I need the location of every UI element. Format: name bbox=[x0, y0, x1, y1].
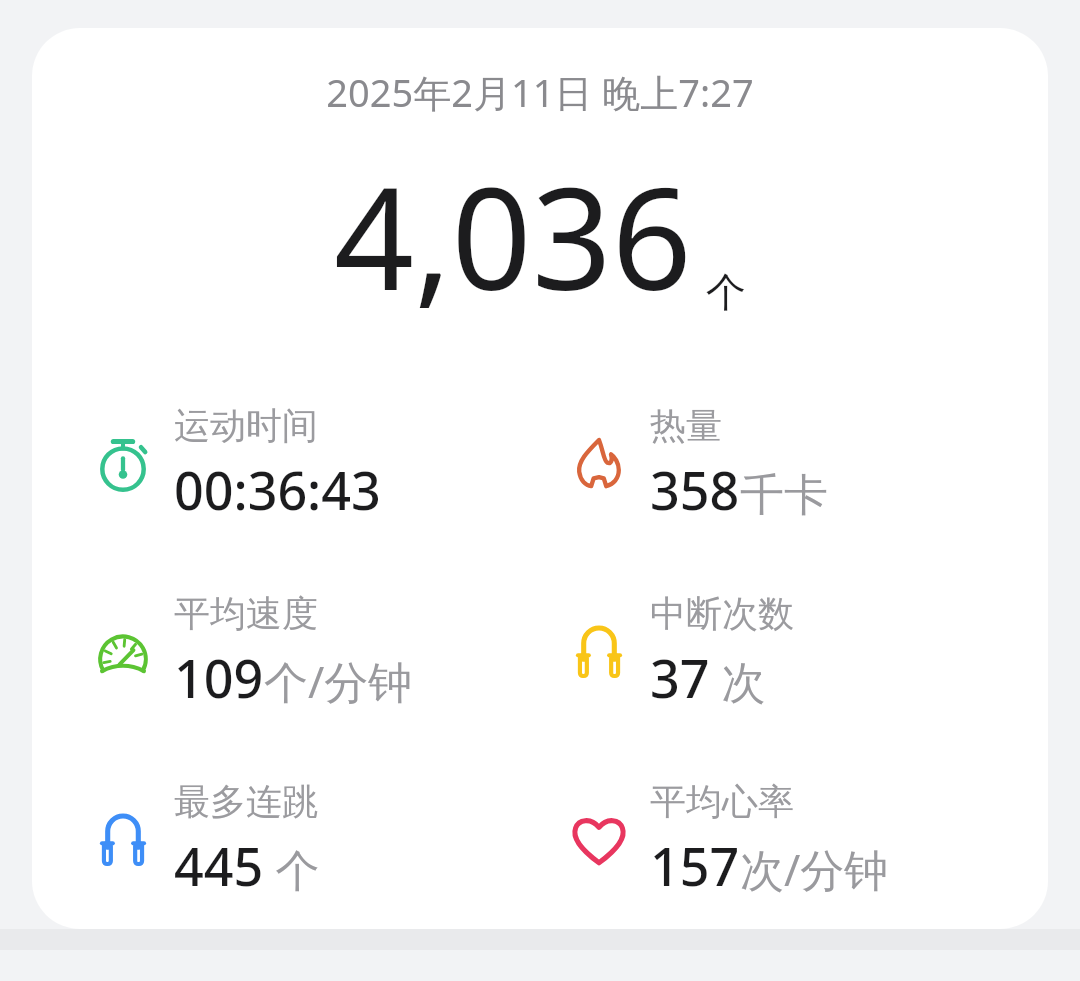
staticText: 个 bbox=[706, 267, 746, 317]
staticText: 热量 bbox=[650, 403, 722, 448]
other: Calories bbox=[566, 431, 632, 497]
button[interactable]: Longest streak bbox=[32, 779, 540, 901]
button[interactable]: Calories bbox=[540, 403, 1048, 525]
staticText: 157 bbox=[650, 830, 740, 901]
other: Longest streak bbox=[90, 807, 156, 873]
staticText: 4,036 bbox=[334, 140, 692, 331]
staticText: 37 bbox=[650, 642, 710, 713]
staticText: 109 bbox=[174, 642, 264, 713]
staticText: 次 bbox=[710, 651, 766, 711]
staticText: 次/分钟 bbox=[740, 839, 889, 899]
staticText: 358 bbox=[650, 454, 740, 525]
staticText: 运动时间 bbox=[174, 403, 318, 448]
staticText: 平均速度 bbox=[174, 591, 318, 636]
staticText: 中断次数 bbox=[650, 591, 794, 636]
other: Average heart rate bbox=[566, 807, 632, 873]
staticText: 2025年2月11日 晚上7:27 bbox=[32, 66, 1048, 118]
button[interactable]: 2025年2月11日 晚上7:27 bbox=[32, 28, 1048, 929]
button[interactable]: Average heart rate bbox=[540, 779, 1048, 901]
staticText: 445 bbox=[174, 830, 264, 901]
button[interactable]: Average speed bbox=[32, 591, 540, 713]
staticText: 千卡 bbox=[740, 468, 828, 523]
staticText: 个/分钟 bbox=[264, 651, 413, 711]
staticText: 个 bbox=[264, 839, 320, 899]
staticText: 00:36:43 bbox=[174, 454, 381, 525]
staticText: 平均心率 bbox=[650, 779, 794, 824]
button[interactable]: Interruptions bbox=[540, 591, 1048, 713]
other: Workout time bbox=[90, 431, 156, 497]
button[interactable]: Workout time bbox=[32, 403, 540, 525]
other: Interruptions bbox=[566, 619, 632, 685]
staticText: 最多连跳 bbox=[174, 779, 318, 824]
other: Average speed bbox=[90, 619, 156, 685]
